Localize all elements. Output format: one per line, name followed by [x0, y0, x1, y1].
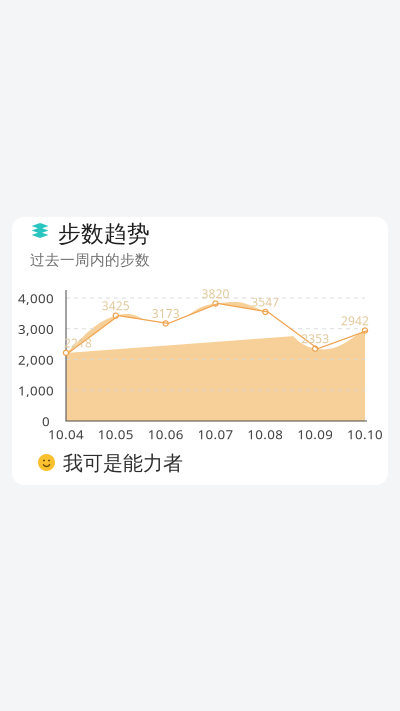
staticText: 我可是能力者 — [63, 451, 183, 476]
staticText: 10.07 — [197, 425, 233, 443]
staticText: 3,000 — [18, 320, 54, 338]
staticText: 10.05 — [98, 425, 134, 443]
staticText: 2353 — [301, 331, 329, 347]
staticText: 1,000 — [18, 381, 54, 399]
staticText: 3547 — [251, 294, 279, 310]
staticText: 3173 — [152, 305, 180, 321]
staticText: 2942 — [341, 313, 369, 328]
staticText: 4,000 — [18, 289, 54, 307]
staticText: 0 — [42, 412, 50, 430]
staticText: 10.08 — [247, 425, 283, 443]
staticText: 10.06 — [148, 425, 184, 443]
staticText: 10.10 — [347, 425, 383, 443]
staticText: 2,000 — [18, 351, 54, 368]
staticText: 3425 — [102, 298, 130, 314]
staticText: 10.04 — [48, 425, 84, 443]
staticText: 2218 — [64, 335, 92, 351]
staticText: 10.09 — [297, 425, 333, 443]
staticText: 步数趋势 — [58, 220, 150, 248]
staticText: 过去一周内的步数 — [30, 251, 150, 269]
staticText: 3820 — [201, 286, 229, 301]
